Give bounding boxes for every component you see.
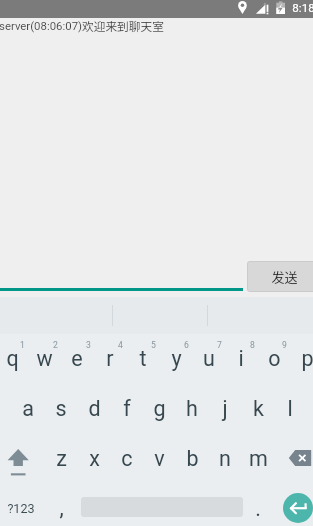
- button[interactable]: [77, 384, 110, 434]
- button[interactable]: Enter: [283, 493, 313, 523]
- button[interactable]: [247, 261, 313, 292]
- staticText: ,: [59, 495, 64, 520]
- staticText: r: [106, 346, 114, 371]
- button[interactable]: [258, 334, 291, 384]
- button[interactable]: [94, 334, 127, 384]
- staticText: i: [238, 346, 244, 371]
- staticText: ?123: [7, 501, 35, 516]
- staticText: h: [186, 396, 198, 421]
- button[interactable]: [0, 485, 47, 526]
- button[interactable]: [110, 384, 143, 434]
- staticText: c: [121, 446, 133, 471]
- button[interactable]: [209, 435, 242, 485]
- staticText: b: [186, 446, 199, 471]
- button[interactable]: [241, 384, 274, 434]
- staticText: q: [6, 346, 19, 371]
- button[interactable]: [0, 334, 28, 384]
- staticText: o: [268, 346, 281, 371]
- staticText: 欢迎来到聊天室: [82, 17, 164, 34]
- button[interactable]: [241, 435, 274, 485]
- staticText: x: [89, 446, 100, 471]
- button[interactable]: [48, 485, 81, 526]
- staticText: f: [123, 396, 131, 421]
- button[interactable]: [143, 384, 176, 434]
- button[interactable]: [159, 334, 192, 384]
- button[interactable]: [176, 384, 209, 434]
- staticText: d: [88, 396, 101, 421]
- button[interactable]: [176, 435, 209, 485]
- staticText: server(08:06:07): [0, 19, 83, 32]
- staticText: 8: [250, 340, 255, 350]
- staticText: m: [249, 446, 268, 471]
- button[interactable]: [225, 334, 258, 384]
- button[interactable]: [44, 384, 77, 434]
- staticText: u: [203, 346, 215, 371]
- staticText: v: [154, 446, 165, 471]
- staticText: k: [253, 396, 264, 421]
- staticText: t: [139, 346, 147, 371]
- button[interactable]: [28, 334, 61, 384]
- staticText: 1: [20, 340, 25, 350]
- staticText: 3: [86, 340, 91, 350]
- staticText: w: [36, 346, 53, 371]
- staticText: 8:18: [292, 1, 313, 15]
- button[interactable]: [110, 435, 143, 485]
- staticText: 发送: [271, 267, 298, 286]
- staticText: 9: [282, 340, 287, 350]
- button[interactable]: [290, 334, 313, 384]
- button[interactable]: [209, 384, 242, 434]
- button[interactable]: Shift: [0, 435, 44, 485]
- button[interactable]: [44, 435, 77, 485]
- staticText: 7: [217, 340, 222, 350]
- button[interactable]: [238, 485, 271, 526]
- staticText: l: [287, 396, 293, 421]
- staticText: g: [153, 396, 166, 421]
- button[interactable]: [143, 435, 176, 485]
- button[interactable]: [127, 334, 160, 384]
- button[interactable]: Backspace: [274, 435, 313, 485]
- staticText: 2: [53, 340, 58, 350]
- staticText: j: [222, 396, 228, 421]
- staticText: p: [301, 346, 313, 371]
- staticText: 5: [151, 340, 156, 350]
- staticText: .: [255, 496, 261, 521]
- button[interactable]: [12, 384, 45, 434]
- staticText: 4: [118, 340, 123, 350]
- staticText: z: [56, 446, 67, 471]
- button[interactable]: [61, 334, 94, 384]
- staticText: e: [71, 346, 83, 371]
- button[interactable]: [274, 384, 307, 434]
- button[interactable]: [77, 435, 110, 485]
- staticText: s: [55, 396, 67, 421]
- staticText: y: [171, 346, 182, 371]
- staticText: a: [22, 396, 34, 421]
- staticText: n: [219, 446, 231, 471]
- staticText: 6: [184, 340, 189, 350]
- button[interactable]: [192, 334, 225, 384]
